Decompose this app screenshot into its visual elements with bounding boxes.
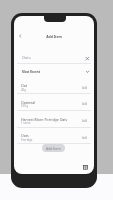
staticText: 40g [21,88,26,92]
staticText: 100 g [21,104,29,108]
staticText: Oats [21,133,29,138]
button[interactable]: Sort order [83,67,92,76]
button[interactable] [17,127,91,144]
button[interactable] [17,77,91,94]
button[interactable]: Back [16,30,26,42]
button[interactable] [17,110,91,127]
staticText: Add [82,119,88,123]
staticText: Add [82,136,88,140]
staticText: Harvest Morn Porridge Oats [21,117,68,122]
button[interactable] [17,93,91,110]
staticText: Most Recent [22,70,40,74]
staticText: Oatmeal [21,100,36,105]
button[interactable]: Oats [20,52,80,63]
staticText: 1 serve [21,121,31,125]
staticText: Oat [21,83,27,88]
staticText: Add Item [14,34,94,39]
staticText: Add [82,86,88,90]
staticText: Porridge [21,138,33,142]
staticText: Add [82,102,88,106]
staticText: Oats [22,55,31,60]
button[interactable]: Hide keyboard [81,163,90,172]
button[interactable]: Add Item [42,144,65,152]
staticText: Add Item [46,146,61,151]
button[interactable]: Clear [83,54,92,63]
